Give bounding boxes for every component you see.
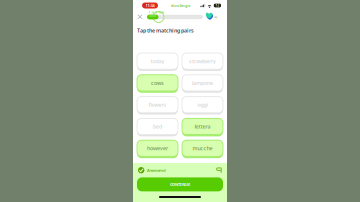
staticText: cows (151, 79, 164, 86)
staticText: mucche (192, 145, 212, 152)
staticText: duolingo (171, 3, 191, 8)
button[interactable]: however (137, 140, 178, 158)
button[interactable]: lampone (182, 75, 223, 93)
staticText: Awesome! (147, 167, 166, 173)
button[interactable]: bed (137, 118, 178, 136)
staticText: ∞ (214, 15, 217, 19)
button[interactable]: CONTINUE (137, 177, 223, 191)
button[interactable]: today (137, 53, 178, 71)
staticText: Tap the matching pairs (137, 27, 194, 34)
staticText: oggi (197, 101, 207, 108)
staticText: strawberry (189, 58, 216, 65)
staticText: lampone (192, 79, 213, 86)
staticText: ✕ (136, 12, 143, 22)
button[interactable]: lettera (182, 118, 223, 136)
button[interactable]: oggi (182, 97, 223, 115)
staticText: today (150, 58, 164, 65)
staticText: lettera (194, 123, 210, 130)
staticText: 1 in a row (148, 11, 163, 14)
staticText: bed (153, 123, 162, 130)
button[interactable]: Report (217, 167, 222, 173)
staticText: CONTINUE (170, 182, 190, 187)
button[interactable]: mucche (182, 140, 223, 158)
button[interactable]: Close (136, 12, 143, 21)
button[interactable]: Hearts (206, 14, 217, 20)
button[interactable]: cows (137, 75, 178, 93)
staticText: flowers (148, 101, 166, 108)
button[interactable]: strawberry (182, 53, 223, 71)
button[interactable]: flowers (137, 97, 178, 115)
staticText: 11:34 (145, 3, 154, 8)
staticText: 12 (215, 4, 219, 7)
staticText: however (147, 145, 168, 152)
